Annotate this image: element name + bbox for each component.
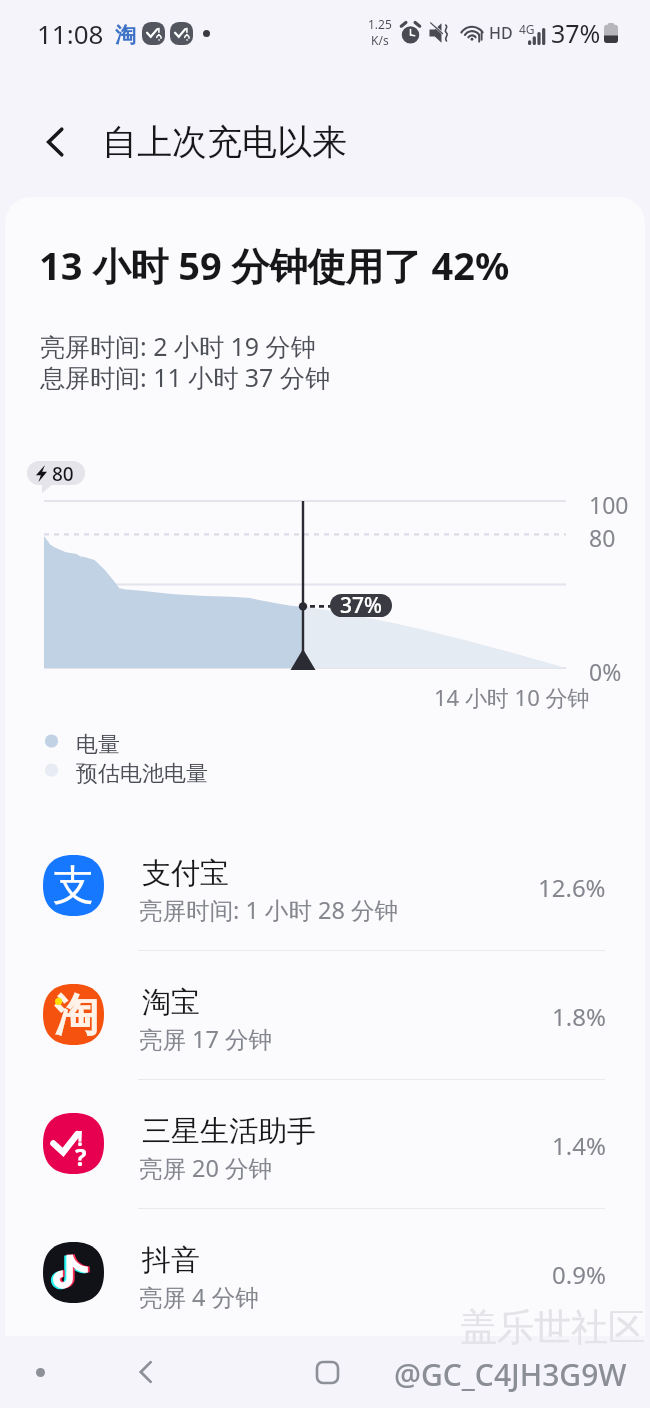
staticText: 淘 (54, 988, 98, 1043)
staticText: 亮屏 17 分钟 (139, 1023, 273, 1055)
staticText: 三星生活助手 (142, 1113, 316, 1150)
staticText: 37% (551, 16, 601, 50)
staticText: 0.9% (552, 1258, 606, 1291)
staticText: 14 小时 10 分钟 (434, 682, 590, 712)
staticText: ? (75, 1140, 87, 1173)
staticText: 亮屏 20 分钟 (139, 1152, 273, 1184)
staticText: K/s (371, 32, 389, 48)
staticText: 1.25 (368, 16, 392, 32)
button[interactable]: 淘 (0, 951, 650, 1080)
staticText: 80 (589, 522, 616, 553)
staticText: 支付宝 (142, 855, 229, 892)
button[interactable]: Back (27, 113, 85, 171)
staticText: 电量 (76, 731, 120, 759)
staticText: @GC_C4JH3G9W (394, 1354, 627, 1395)
staticText: 12.6% (538, 871, 606, 904)
staticText: 13 小时 59 分钟使用了 42% (39, 239, 510, 291)
button[interactable]: 抖音 (0, 1209, 650, 1338)
staticText: 预估电池电量 (76, 760, 208, 788)
staticText: 100 (589, 489, 629, 520)
staticText: 1.8% (552, 1000, 606, 1033)
staticText: 亮屏 4 分钟 (139, 1281, 259, 1313)
staticText: HD (489, 22, 513, 44)
button[interactable]: ! (0, 1080, 650, 1209)
staticText: 亮屏时间: 1 小时 28 分钟 (139, 894, 399, 926)
staticText: 淘宝 (142, 984, 200, 1021)
staticText: 息屏时间: 11 小时 37 分钟 (40, 360, 330, 394)
staticText: 37% (340, 594, 382, 614)
staticText: 0% (589, 656, 622, 687)
staticText: ! (77, 1124, 83, 1153)
staticText: 支 (53, 860, 94, 912)
button[interactable]: 支 (0, 822, 650, 951)
staticText: 盖乐世社区 (460, 1304, 645, 1351)
button[interactable]: Recents (4, 1336, 76, 1408)
staticText: 抖音 (142, 1242, 200, 1279)
staticText: 自上次充电以来 (102, 120, 347, 164)
button[interactable]: Back (110, 1336, 182, 1408)
staticText: 淘 (115, 22, 136, 46)
staticText: 11:08 (37, 16, 104, 51)
staticText: 4G (519, 21, 535, 37)
staticText: 80 (52, 461, 74, 485)
button[interactable]: Home (291, 1336, 363, 1408)
staticText: 亮屏时间: 2 小时 19 分钟 (40, 329, 316, 363)
staticText: 1.4% (552, 1129, 606, 1162)
